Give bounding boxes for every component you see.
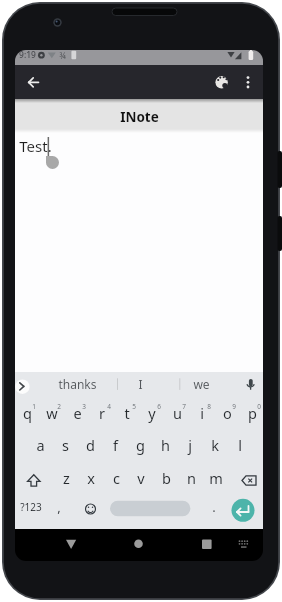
staticText: INote [120,108,159,126]
button[interactable]: , [51,495,67,519]
staticText: k [211,435,219,455]
button[interactable]: b [154,466,178,490]
button[interactable]: ?123 [16,495,46,519]
button[interactable] [208,68,235,96]
button[interactable]: c [104,466,128,490]
staticText: . [212,498,216,516]
staticText: l [238,435,242,455]
staticText: 9:19 [19,50,36,61]
button[interactable]: l [228,433,252,457]
button[interactable] [124,534,152,554]
staticText: f [113,435,118,455]
button[interactable]: u [165,401,189,425]
button[interactable]: w [40,401,64,425]
button[interactable]: m [204,466,228,490]
button[interactable] [237,68,259,96]
staticText: ¾ [59,50,66,61]
staticText: 7 [182,402,186,411]
button[interactable]: y [140,401,164,425]
button[interactable]: I [110,372,170,396]
button[interactable]: we [171,372,231,396]
button[interactable]: h [153,433,177,457]
button[interactable]: s [53,433,77,457]
staticText: p [248,403,257,423]
staticText: ?123 [20,500,42,514]
staticText: we [193,376,210,392]
button[interactable] [20,68,48,96]
button[interactable] [15,131,263,372]
staticText: y [148,403,156,423]
staticText: s [62,435,69,455]
staticText: j [188,435,192,455]
button[interactable]: thanks [47,372,107,396]
staticText: 1 [32,402,36,411]
staticText: 3 [82,402,86,411]
staticText: e [73,403,82,423]
button[interactable]: e [65,401,89,425]
button[interactable]: z [54,466,78,490]
button[interactable]: p [240,401,263,425]
staticText: 5 [132,402,136,411]
button[interactable]: a [28,433,52,457]
staticText: w [46,403,58,423]
staticText: , [57,498,61,516]
staticText: Test. [19,136,52,156]
staticText: u [173,403,182,423]
staticText: c [113,468,120,488]
staticText: g [136,435,145,455]
button[interactable] [237,472,263,490]
staticText: 2 [57,402,61,411]
button[interactable] [110,500,191,516]
staticText: I [138,376,143,392]
staticText: d [86,435,95,455]
staticText: m [209,468,223,488]
button[interactable]: x [79,466,103,490]
staticText: o [223,403,232,423]
staticText: z [63,468,70,488]
staticText: x [87,468,95,488]
staticText: 6 [157,402,161,411]
button[interactable]: d [78,433,102,457]
button[interactable] [79,500,101,518]
staticText: 4 [107,402,111,411]
staticText: n [187,468,196,488]
button[interactable] [197,534,225,554]
staticText: t [124,403,130,423]
staticText: thanks [58,376,97,392]
button[interactable]: q [15,401,39,425]
staticText: 9 [232,402,236,411]
button[interactable]: t [115,401,139,425]
staticText: b [162,468,171,488]
staticText: r [99,403,105,423]
button[interactable]: j [178,433,202,457]
staticText: v [137,468,145,488]
staticText: h [161,435,170,455]
staticText: a [36,435,45,455]
button[interactable]: n [179,466,203,490]
button[interactable] [241,374,261,396]
button[interactable]: g [128,433,152,457]
button[interactable]: f [103,433,127,457]
staticText: q [23,403,32,423]
staticText: i [200,403,204,423]
button[interactable] [231,498,255,522]
staticText: 8 [207,402,211,411]
button[interactable] [21,472,47,490]
button[interactable] [57,534,85,554]
button[interactable]: i [190,401,214,425]
button[interactable]: v [129,466,153,490]
staticText: 0 [257,402,261,411]
button[interactable]: . [206,495,222,519]
button[interactable]: k [203,433,227,457]
button[interactable]: r [90,401,114,425]
button[interactable]: o [215,401,239,425]
